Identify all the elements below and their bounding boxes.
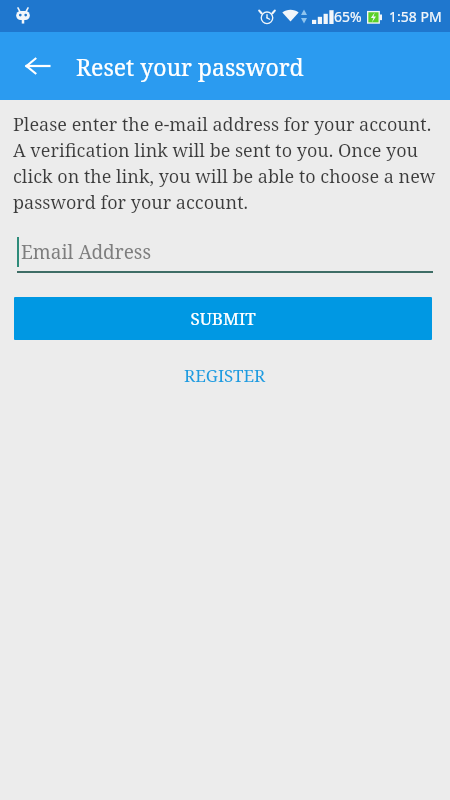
button[interactable]: Back [14, 42, 62, 90]
button[interactable]: Email Address [17, 237, 433, 273]
staticText: Email Address [21, 239, 151, 265]
button[interactable]: REGISTER [168, 360, 282, 391]
staticText: 65% [334, 7, 362, 26]
staticText: Please enter the e-mail address for your… [13, 112, 440, 215]
staticText: Reset your password [76, 51, 304, 82]
staticText: 1:58 PM [389, 7, 442, 26]
button[interactable]: SUBMIT [14, 297, 432, 340]
staticText: REGISTER [184, 364, 266, 387]
staticText: SUBMIT [190, 307, 256, 330]
